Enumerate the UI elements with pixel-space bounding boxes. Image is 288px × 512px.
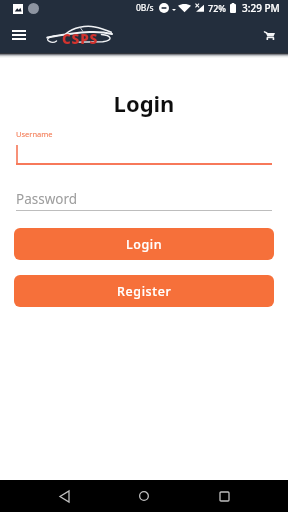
staticText: Register: [117, 283, 172, 300]
button[interactable]: Shopping cart: [255, 21, 283, 49]
staticText: 72%: [208, 2, 226, 14]
staticText: Password: [16, 190, 78, 208]
button[interactable]: Login: [14, 228, 274, 260]
staticText: Login: [0, 88, 288, 118]
button[interactable]: Recent apps: [208, 480, 240, 512]
button[interactable]: Open navigation menu: [5, 21, 33, 49]
button[interactable]: Register: [14, 275, 274, 307]
button[interactable]: Username: [16, 129, 272, 165]
staticText: CSPS: [62, 30, 99, 48]
staticText: 3:29 PM: [242, 1, 280, 15]
staticText: Username: [16, 129, 53, 139]
staticText: 0B/s: [136, 2, 154, 14]
button[interactable]: Home: [128, 480, 160, 512]
staticText: Login: [126, 236, 163, 253]
button[interactable]: Password: [16, 190, 272, 211]
button[interactable]: Back: [48, 480, 80, 512]
